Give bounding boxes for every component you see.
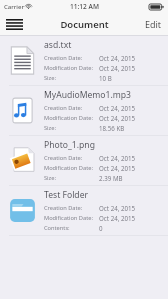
staticText: Oct 24, 2015 <box>99 204 136 212</box>
button[interactable]: MyAudioMemo1.mp3 <box>0 86 168 135</box>
staticText: Creation Date: <box>44 104 83 112</box>
staticText: 2.39 MB <box>99 174 123 182</box>
staticText: 0 <box>99 224 103 232</box>
staticText: Size: <box>44 124 56 132</box>
button[interactable]: Edit <box>139 13 168 35</box>
staticText: Edit <box>145 18 162 30</box>
staticText: Oct 24, 2015 <box>99 54 136 62</box>
staticText: Test Folder <box>44 189 89 201</box>
button[interactable]: asd.txt <box>0 36 168 85</box>
staticText: Modification Date: <box>44 214 93 222</box>
staticText: Size: <box>44 74 56 82</box>
staticText: Modification Date: <box>44 164 93 172</box>
staticText: Creation Date: <box>44 204 83 212</box>
staticText: Oct 24, 2015 <box>99 164 136 172</box>
staticText: Photo_1.png <box>44 139 95 151</box>
staticText: Oct 24, 2015 <box>99 214 136 222</box>
staticText: 10 B <box>99 74 112 82</box>
staticText: Size: <box>44 174 56 182</box>
staticText: MyAudioMemo1.mp3 <box>44 89 132 101</box>
staticText: 18.56 KB <box>99 124 125 132</box>
staticText: 11:12 AM <box>70 2 99 11</box>
staticText: Contents: <box>44 224 70 232</box>
button[interactable]: Menu <box>0 13 28 35</box>
staticText: Oct 24, 2015 <box>99 64 136 72</box>
staticText: Creation Date: <box>44 154 83 162</box>
button[interactable]: Photo_1.png <box>0 136 168 185</box>
staticText: Document <box>60 18 109 31</box>
staticText: Oct 24, 2015 <box>99 114 136 122</box>
staticText: Oct 24, 2015 <box>99 154 136 162</box>
button[interactable]: Test Folder <box>0 186 168 235</box>
staticText: Modification Date: <box>44 114 93 122</box>
staticText: Modification Date: <box>44 64 93 72</box>
staticText: Oct 24, 2015 <box>99 104 136 112</box>
staticText: asd.txt <box>44 39 72 51</box>
staticText: Creation Date: <box>44 54 83 62</box>
staticText: Carrier <box>4 3 24 11</box>
